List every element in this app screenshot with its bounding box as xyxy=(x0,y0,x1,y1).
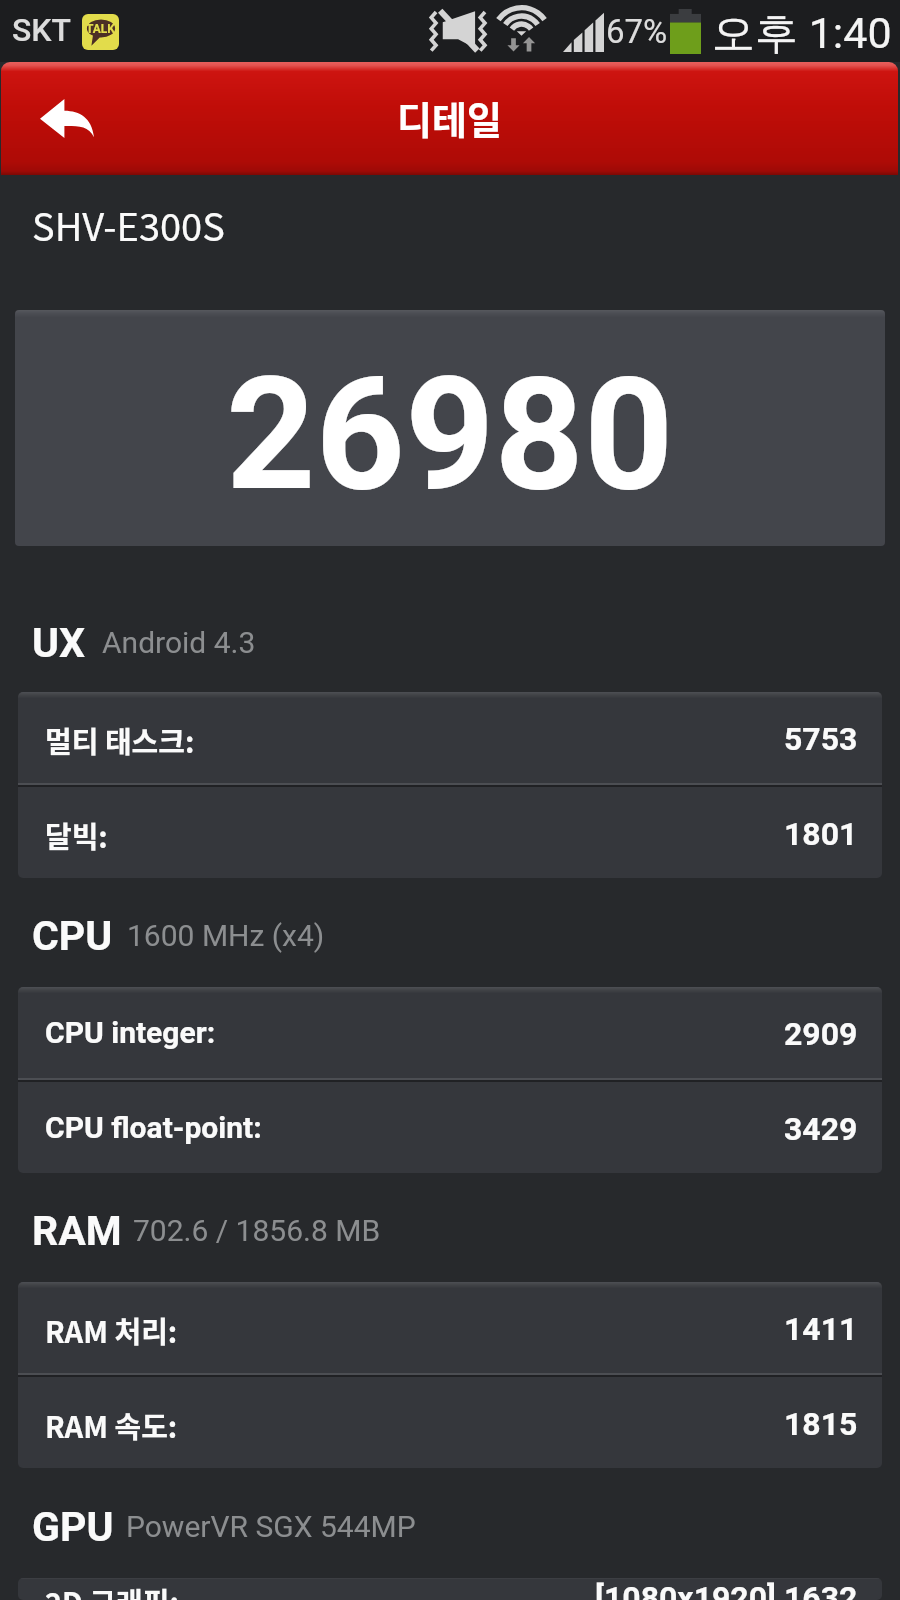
staticText: 5753 xyxy=(784,720,858,758)
staticText: UX xyxy=(32,619,86,667)
staticText: TALK xyxy=(86,22,115,36)
staticText: Android 4.3 xyxy=(102,625,256,660)
staticText: RAM 속도: xyxy=(45,1404,178,1446)
staticText: 702.6 / 1856.8 MB xyxy=(133,1213,381,1248)
staticText: PowerVR SGX 544MP xyxy=(126,1509,416,1544)
button[interactable]: Back xyxy=(1,62,133,175)
staticText: CPU integer: xyxy=(45,1015,216,1050)
staticText: 2D 그래픽: xyxy=(45,1580,179,1600)
staticText: RAM xyxy=(32,1207,122,1255)
button[interactable]: RAM 속도: xyxy=(18,1377,882,1468)
staticText: 달빅: xyxy=(45,814,108,856)
staticText: 1600 MHz (x4) xyxy=(127,918,325,953)
staticText: 디테일 xyxy=(397,90,502,145)
staticText: CPU xyxy=(32,912,113,960)
button[interactable]: 달빅: xyxy=(18,787,882,878)
staticText: SKT xyxy=(12,11,71,49)
button[interactable]: CPU integer: xyxy=(18,987,882,1078)
button[interactable]: 멀티 태스크: xyxy=(18,692,882,783)
staticText: 2909 xyxy=(784,1015,858,1053)
staticText: [1080x1920] 1632 xyxy=(595,1579,858,1600)
staticText: CPU float-point: xyxy=(45,1110,262,1145)
staticText: 3429 xyxy=(784,1110,858,1148)
staticText: 1801 xyxy=(784,815,858,853)
staticText: GPU xyxy=(32,1503,114,1551)
staticText: 오후 1:40 xyxy=(712,7,892,61)
button[interactable]: RAM 처리: xyxy=(18,1282,882,1373)
staticText: SHV-E300S xyxy=(32,197,225,252)
staticText: 67% xyxy=(606,12,668,51)
staticText: 멀티 태스크: xyxy=(45,719,195,761)
staticText: 1411 xyxy=(784,1310,858,1348)
staticText: 26980 xyxy=(226,343,674,526)
button[interactable]: CPU float-point: xyxy=(18,1082,882,1173)
staticText: 1815 xyxy=(784,1405,858,1443)
button[interactable]: 2D 그래픽: xyxy=(18,1578,882,1600)
staticText: RAM 처리: xyxy=(45,1309,178,1351)
